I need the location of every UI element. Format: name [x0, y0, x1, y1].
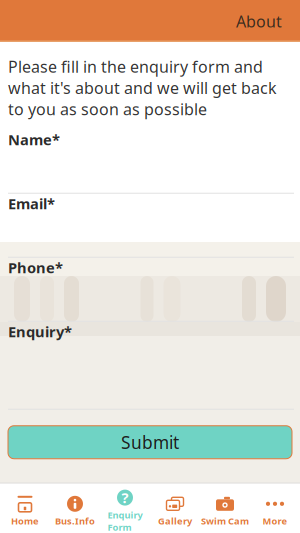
- button[interactable]: Gallery: [150, 490, 200, 533]
- staticText: Swim Cam: [201, 515, 249, 527]
- staticText: Gallery: [158, 515, 192, 527]
- staticText: Home: [11, 515, 39, 527]
- button[interactable]: ?: [100, 484, 150, 533]
- staticText: Bus.Info: [55, 515, 95, 527]
- button[interactable]: Bus.Info: [50, 490, 100, 533]
- button[interactable]: Swim Cam: [200, 490, 250, 533]
- staticText: Name*: [8, 130, 60, 149]
- staticText: ?: [121, 488, 128, 507]
- staticText: Enquiry*: [8, 322, 72, 341]
- staticText: Submit: [121, 431, 179, 454]
- staticText: Enquiry Form: [107, 509, 142, 533]
- staticText: Phone*: [8, 258, 63, 277]
- staticText: Email*: [8, 194, 55, 213]
- button[interactable]: Submit: [8, 426, 292, 459]
- button[interactable]: Home: [0, 490, 50, 533]
- button[interactable]: More: [250, 490, 300, 533]
- staticText: Please fill in the enquiry form and what…: [8, 56, 277, 120]
- staticText: About: [236, 11, 282, 32]
- staticText: More: [262, 515, 287, 527]
- button[interactable]: About: [226, 5, 292, 38]
